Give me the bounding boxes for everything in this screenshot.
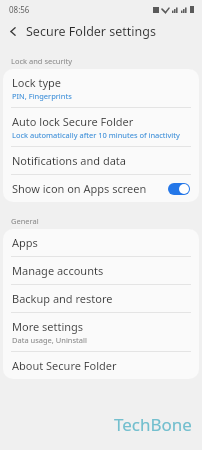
staticText: Lock automatically after 10 minutes of i… (12, 130, 180, 140)
staticText: Lock and security (11, 56, 73, 66)
staticText: Manage accounts (12, 263, 104, 278)
staticText: Apps (12, 235, 38, 250)
button[interactable]: About Secure Folder (3, 352, 199, 379)
staticText: Secure Folder settings (26, 23, 156, 40)
staticText: Lock type (12, 75, 61, 90)
button[interactable]: Notifications and data (3, 147, 199, 174)
staticText: 08:56 (9, 4, 30, 15)
button[interactable]: Manage accounts (3, 257, 199, 284)
button[interactable]: Back (0, 18, 26, 44)
staticText: Notifications and data (12, 153, 126, 168)
staticText: More settings (12, 319, 84, 334)
button[interactable]: Apps (3, 229, 199, 256)
staticText: TechBone (114, 413, 192, 436)
button[interactable]: Auto lock Secure Folder (3, 108, 199, 146)
button[interactable]: Lock type (3, 69, 199, 107)
button[interactable]: More settings (3, 313, 199, 351)
staticText: Auto lock Secure Folder (12, 114, 134, 129)
staticText: Data usage, Uninstall (12, 335, 87, 345)
button[interactable]: Backup and restore (3, 285, 199, 312)
staticText: PIN, Fingerprints (12, 91, 72, 101)
staticText: About Secure Folder (12, 358, 117, 373)
staticText: Show icon on Apps screen (12, 181, 147, 196)
button[interactable]: Show icon on Apps screen (3, 175, 199, 202)
staticText: General (11, 216, 39, 226)
staticText: Backup and restore (12, 291, 113, 306)
button[interactable]: Show icon on Apps screen toggle (168, 183, 190, 195)
